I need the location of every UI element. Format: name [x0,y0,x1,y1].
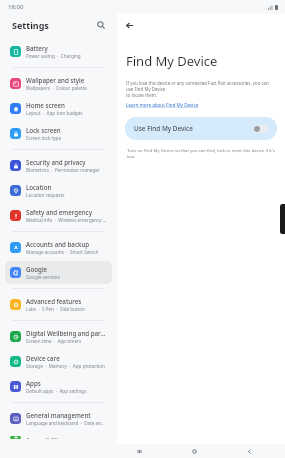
button[interactable]: Home screen [5,97,112,120]
staticText: Device care [26,354,60,362]
button[interactable]: Google [5,261,112,284]
staticText: If you lose this device or any connected… [126,80,277,98]
button[interactable]: Battery [5,40,112,63]
staticText: Wallpapers · Colour palette [26,85,87,91]
staticText: Apps [26,379,41,387]
staticText: Use Find My Device [134,124,253,133]
staticText: Lock screen [26,126,61,134]
staticText: Accounts and backup [26,240,90,248]
button[interactable]: Back [222,444,277,458]
staticText: Medical info · Wireless emergency alerts [26,217,107,223]
staticText: Find My Device [126,52,218,70]
staticText: Turn on Find My Device so that you can f… [127,147,277,159]
button[interactable]: Search [93,17,109,33]
button[interactable]: Advanced features [5,293,112,316]
staticText: Power saving · Charging [26,53,81,59]
staticText: Google [26,265,48,273]
staticText: Labs · S Pen · Side button [26,306,85,312]
staticText: Screen lock type [26,135,61,141]
staticText: Google services [26,274,60,280]
button[interactable]: Wallpaper and style [5,72,112,95]
staticText: Screen time · App timers [26,338,82,344]
staticText: Battery [26,44,48,52]
button[interactable]: Lock screen [5,122,112,145]
button[interactable]: General management [5,407,112,430]
staticText: Language and keyboard · Date and time [26,420,107,426]
staticText: Location [26,183,52,191]
button[interactable]: Accounts and backup [5,236,112,259]
staticText: Digital Wellbeing and parental controls [26,329,107,337]
staticText: Home screen [26,101,65,109]
button[interactable]: Use Find My Device [125,117,277,140]
button[interactable]: Back [121,17,137,33]
staticText: Biometrics · Permission manager [26,167,100,173]
staticText: Safety and emergency [26,208,92,216]
button[interactable]: Learn more about Find My Device [126,102,199,108]
staticText: Default apps · App settings [26,388,87,394]
staticText: Storage · Memory · App protection [26,363,105,369]
staticText: Security and privacy [26,158,86,166]
staticText: Accessibility [26,436,62,439]
staticText: General management [26,411,91,419]
button[interactable]: Device care [5,350,112,373]
staticText: Manage accounts · Smart Switch [26,249,99,255]
button[interactable]: Accessibility [5,432,112,443]
button[interactable]: Location [5,179,112,202]
staticText: Wallpaper and style [26,76,85,84]
button[interactable]: Safety and emergency [5,204,112,227]
button[interactable]: Security and privacy [5,154,112,177]
staticText: Layout · App icon badges [26,110,83,116]
button[interactable]: Home [167,444,222,458]
staticText: Advanced features [26,297,82,305]
staticText: Settings [12,19,49,31]
button[interactable]: Recents [112,444,167,458]
button[interactable]: Digital Wellbeing and parental controls [5,325,112,348]
staticText: 18:00 [8,3,24,11]
staticText: Location requests [26,192,65,198]
button[interactable]: Apps [5,375,112,398]
